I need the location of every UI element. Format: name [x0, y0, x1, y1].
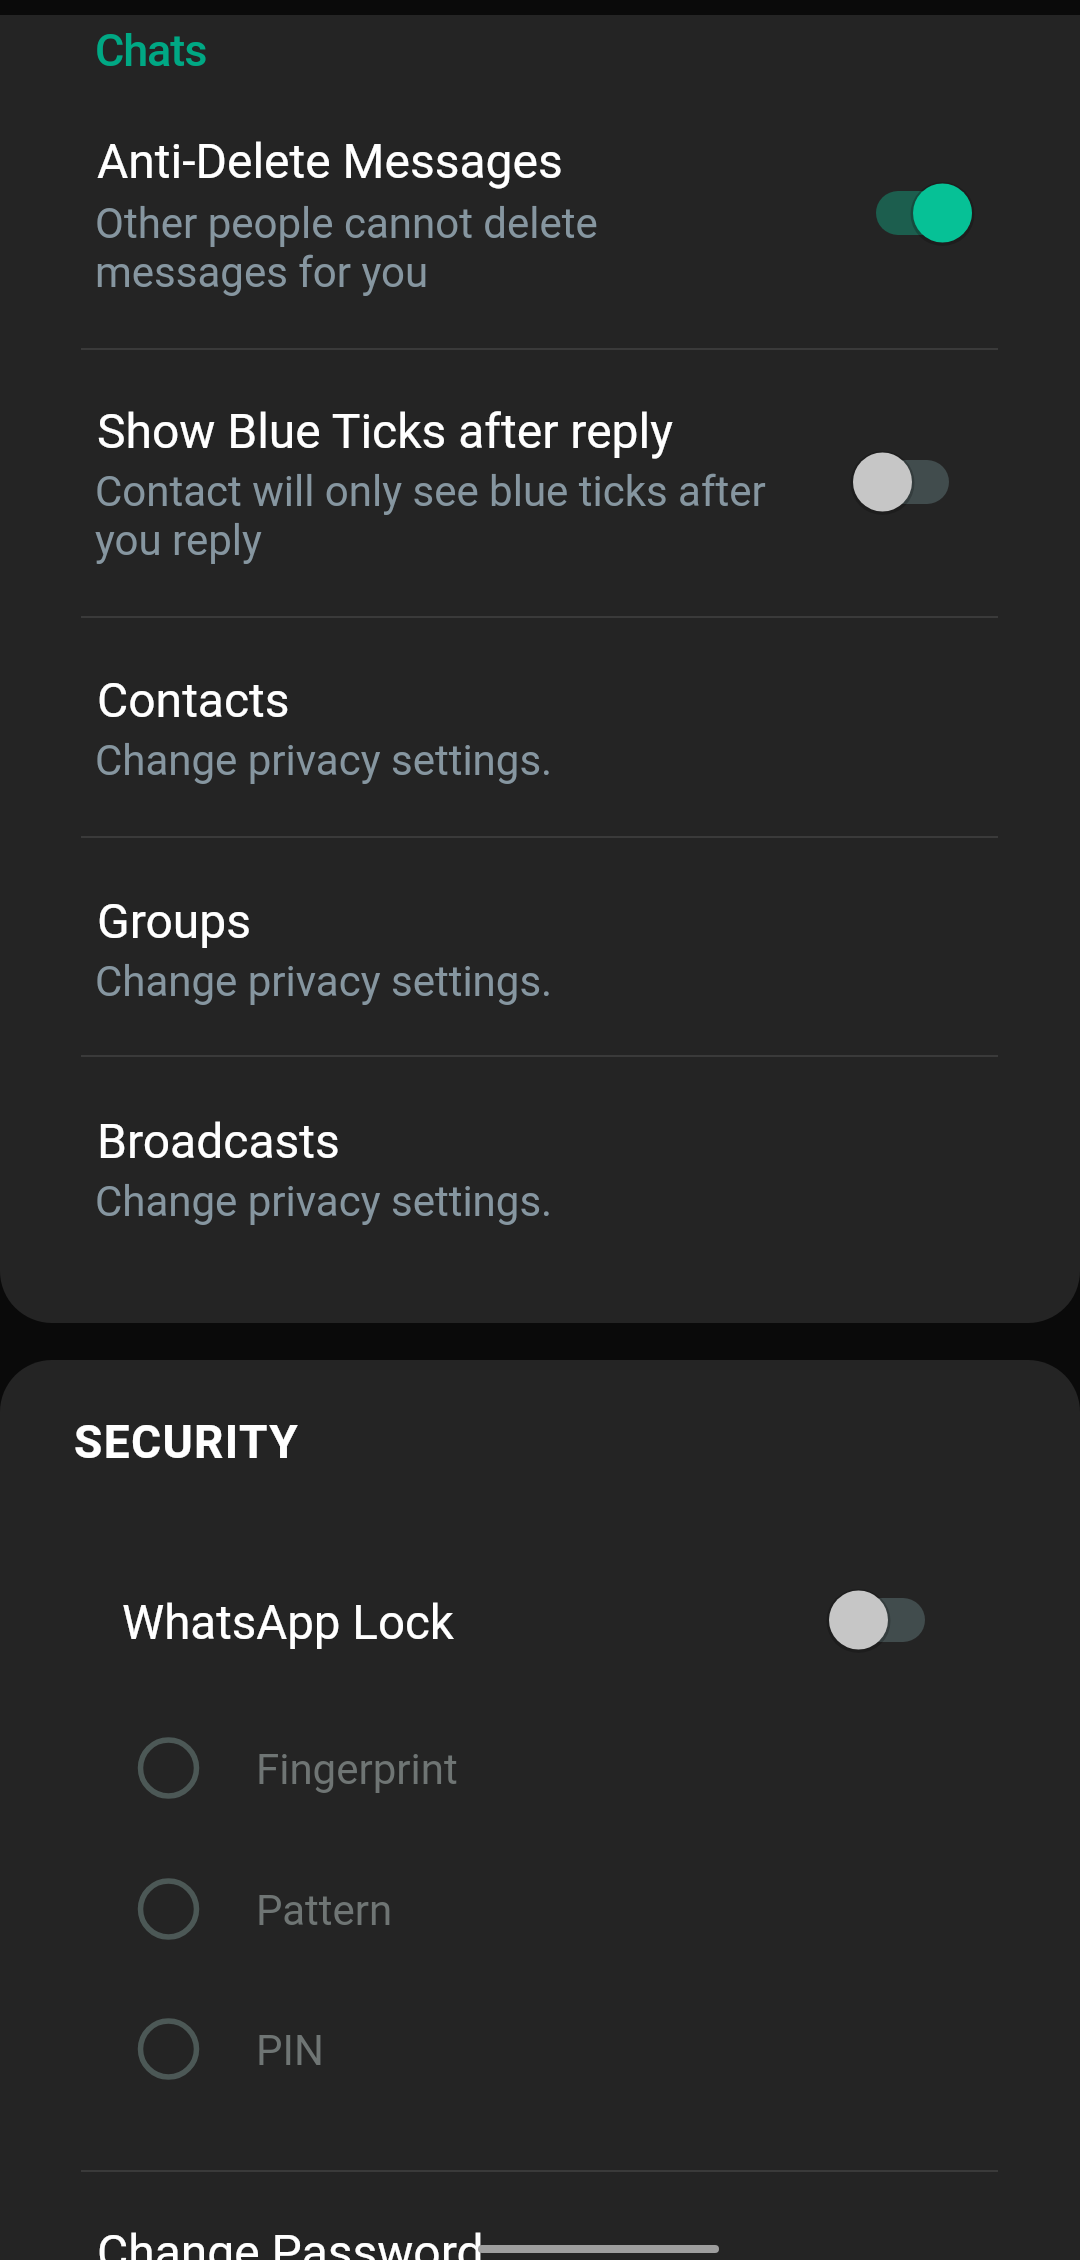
- button[interactable]: Switch on: [864, 173, 984, 253]
- staticText: Other people cannot delete: [95, 199, 598, 248]
- button[interactable]: Switch off: [817, 1580, 937, 1660]
- button[interactable]: Fingerprint: [110, 1706, 990, 1830]
- staticText: Pattern: [256, 1886, 393, 1935]
- button[interactable]: Pattern: [110, 1847, 990, 1971]
- staticText: Change Password: [97, 2224, 484, 2260]
- button[interactable]: WhatsApp Lock: [0, 1560, 1080, 1690]
- staticText: Fingerprint: [256, 1745, 458, 1794]
- staticText: Change privacy settings.: [95, 736, 553, 785]
- button[interactable]: PIN: [110, 1987, 990, 2111]
- staticText: Change privacy settings.: [95, 957, 553, 1006]
- staticText: Contact will only see blue ticks after: [95, 467, 766, 516]
- button[interactable]: Show Blue Ticks after reply: [0, 348, 1080, 616]
- staticText: Show Blue Ticks after reply: [97, 403, 673, 459]
- staticText: Broadcasts: [97, 1113, 340, 1169]
- button[interactable]: Contacts: [0, 616, 1080, 836]
- button[interactable]: Groups: [0, 836, 1080, 1055]
- staticText: Chats: [95, 24, 207, 77]
- staticText: PIN: [256, 2026, 324, 2075]
- staticText: SECURITY: [74, 1415, 300, 1469]
- staticText: messages for you: [95, 248, 429, 297]
- button[interactable]: Anti-Delete Messages: [0, 90, 1080, 348]
- staticText: Change privacy settings.: [95, 1177, 553, 1226]
- staticText: WhatsApp Lock: [122, 1595, 454, 1651]
- staticText: Contacts: [97, 672, 290, 728]
- button[interactable]: Change Password: [0, 2190, 1080, 2260]
- staticText: you reply: [95, 516, 262, 565]
- staticText: Groups: [97, 893, 252, 949]
- button[interactable]: Broadcasts: [0, 1055, 1080, 1323]
- button[interactable]: Switch off: [841, 442, 961, 522]
- staticText: Anti-Delete Messages: [97, 133, 563, 189]
